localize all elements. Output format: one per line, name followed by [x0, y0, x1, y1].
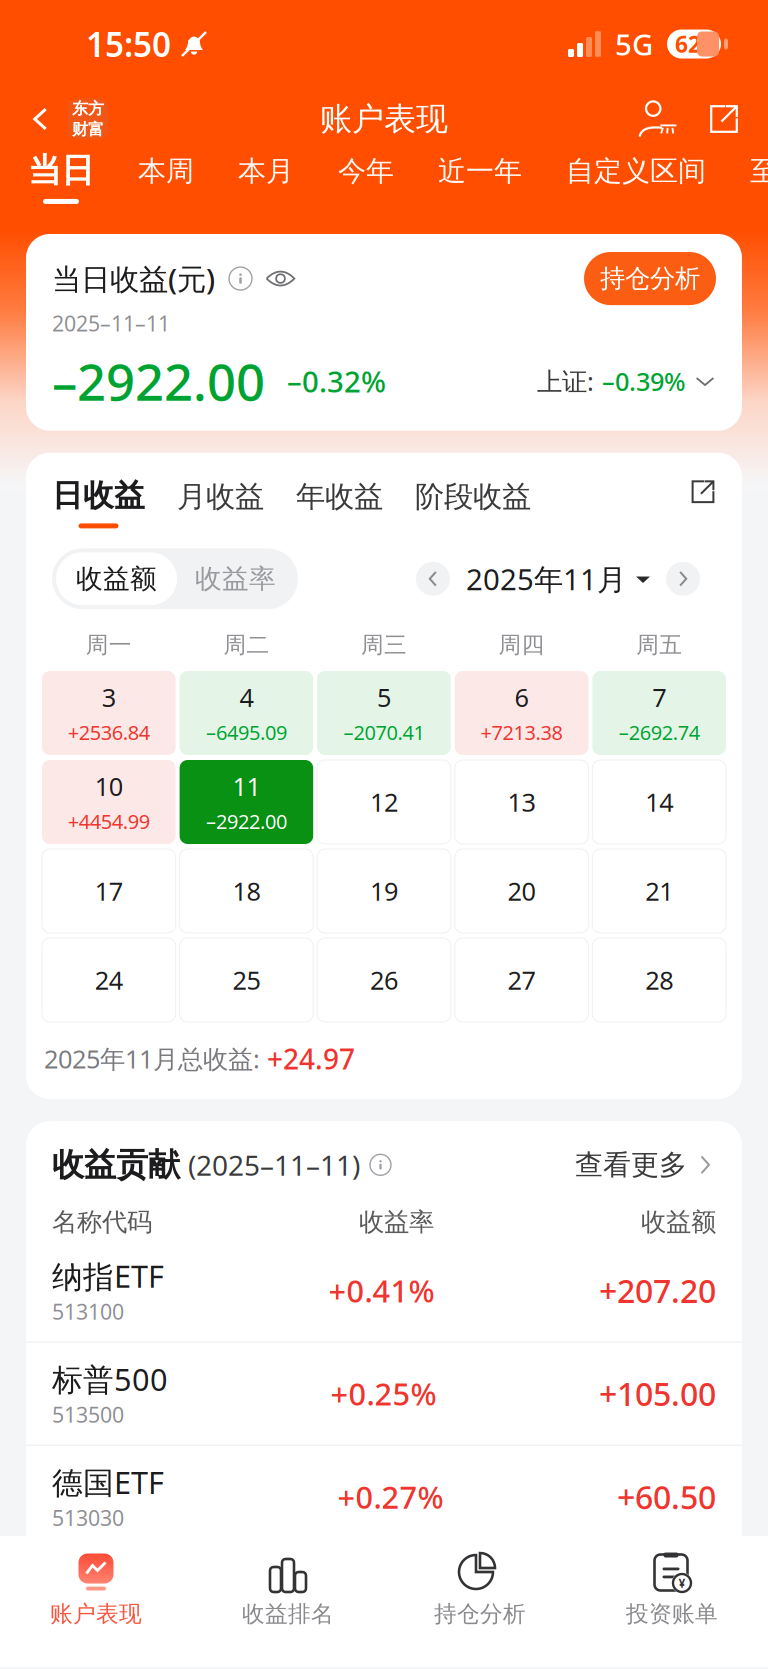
- staticText: 5: [377, 680, 391, 714]
- button[interactable]: 19: [317, 849, 451, 933]
- button[interactable]: 5: [317, 671, 451, 755]
- button[interactable]: 阶段收益: [383, 477, 531, 515]
- button[interactable]: 上一月: [416, 562, 450, 596]
- staticText: 东方: [72, 99, 104, 118]
- button[interactable]: 收益率: [177, 552, 294, 605]
- staticText: 18: [232, 874, 260, 908]
- staticText: 周四: [499, 631, 545, 659]
- button[interactable]: 当日: [28, 150, 94, 204]
- staticText: 收益率: [195, 562, 276, 595]
- button[interactable]: 上证:: [537, 364, 716, 398]
- button[interactable]: 近一年: [438, 150, 522, 188]
- button[interactable]: 收益说明: [215, 267, 252, 290]
- staticText: 收益排名: [242, 1600, 334, 1628]
- button[interactable]: 17: [42, 849, 176, 933]
- button[interactable]: 月收益: [145, 477, 264, 515]
- button[interactable]: 我的账户: [632, 99, 684, 139]
- staticText: 上证:: [537, 364, 594, 398]
- button[interactable]: 今年: [338, 150, 394, 188]
- button[interactable]: 本周: [138, 150, 194, 188]
- staticText: +24.97: [267, 1040, 355, 1077]
- button[interactable]: 返回东方财富: [22, 92, 114, 145]
- staticText: 513880: [52, 1606, 124, 1635]
- button[interactable]: 年收益: [264, 477, 383, 515]
- button[interactable]: 日收益: [52, 477, 145, 528]
- button[interactable]: 收益额: [56, 552, 177, 605]
- staticText: +0.25%: [330, 1373, 436, 1414]
- staticText: 收益贡献: [52, 1145, 180, 1184]
- staticText: 投资账单: [626, 1600, 718, 1628]
- button[interactable]: 收益排名: [192, 1550, 384, 1628]
- button[interactable]: 24: [42, 938, 176, 1022]
- button[interactable]: 26: [317, 938, 451, 1022]
- staticText: +105.00: [599, 1372, 716, 1415]
- staticText: 当日: [28, 150, 94, 191]
- staticText: 20: [508, 874, 536, 908]
- button[interactable]: 下一月: [666, 562, 700, 596]
- button[interactable]: 4: [180, 671, 313, 755]
- button[interactable]: 日经ETF: [26, 1549, 742, 1651]
- staticText: 持仓分析: [600, 263, 700, 294]
- staticText: 4: [239, 680, 253, 714]
- button[interactable]: 查看更多: [575, 1148, 716, 1182]
- staticText: 月收益: [177, 479, 264, 515]
- button[interactable]: 持仓分析: [584, 252, 716, 305]
- staticText: 本周: [138, 154, 194, 188]
- button[interactable]: 6: [455, 671, 588, 755]
- staticText: 日经ETF: [52, 1565, 164, 1605]
- button[interactable]: 自定义区间: [566, 150, 706, 188]
- button[interactable]: 28: [592, 938, 726, 1022]
- button[interactable]: 本月: [238, 150, 294, 188]
- button[interactable]: 德国ETF: [26, 1446, 742, 1548]
- staticText: 收益率: [359, 1206, 434, 1238]
- staticText: 25: [232, 963, 260, 997]
- button[interactable]: 10: [42, 760, 176, 844]
- button[interactable]: 14: [592, 760, 726, 844]
- staticText: 26: [370, 963, 398, 997]
- staticText: 近一年: [438, 154, 522, 188]
- button[interactable]: 至今: [750, 150, 768, 188]
- button[interactable]: ¥: [576, 1550, 768, 1628]
- staticText: (2025–11–11): [188, 1146, 360, 1183]
- button[interactable]: 27: [455, 938, 588, 1022]
- staticText: 今年: [338, 154, 394, 188]
- staticText: 21: [645, 874, 673, 908]
- staticText: 查看更多: [575, 1148, 687, 1182]
- button[interactable]: 25: [180, 938, 313, 1022]
- button[interactable]: 21: [592, 849, 726, 933]
- staticText: –2922.00: [206, 808, 287, 835]
- staticText: 账户表现: [320, 99, 448, 139]
- button[interactable]: 持仓分析: [384, 1550, 576, 1628]
- staticText: 17: [95, 874, 123, 908]
- button[interactable]: 12: [317, 760, 451, 844]
- button[interactable]: 3: [42, 671, 176, 755]
- staticText: 收益额: [641, 1206, 716, 1238]
- staticText: 周二: [223, 631, 269, 659]
- staticText: 2025–11–11: [52, 309, 170, 337]
- staticText: 15:50: [86, 22, 171, 66]
- button[interactable]: 分享: [684, 103, 740, 135]
- staticText: 24: [95, 963, 123, 997]
- button[interactable]: 7: [592, 671, 726, 755]
- staticText: 持仓分析: [434, 1600, 526, 1628]
- button[interactable]: 纳指ETF: [26, 1240, 742, 1342]
- staticText: 27: [508, 963, 536, 997]
- staticText: +0.18%: [337, 1579, 443, 1620]
- button[interactable]: 标普500: [26, 1343, 742, 1445]
- button[interactable]: 分享收益: [690, 477, 716, 505]
- staticText: +42.10: [617, 1578, 716, 1621]
- staticText: 2025年11月: [466, 559, 626, 598]
- button[interactable]: 13: [455, 760, 588, 844]
- button[interactable]: 隐藏金额: [252, 269, 295, 288]
- button[interactable]: 11: [180, 760, 313, 844]
- staticText: 年收益: [296, 479, 383, 515]
- staticText: +4454.99: [68, 808, 150, 835]
- staticText: 收益额: [76, 562, 157, 595]
- button[interactable]: 收益贡献说明: [360, 1154, 391, 1175]
- staticText: +0.41%: [328, 1270, 434, 1311]
- staticText: +7213.38: [481, 719, 563, 746]
- button[interactable]: 账户表现: [0, 1550, 192, 1628]
- button[interactable]: 20: [455, 849, 588, 933]
- staticText: 3: [102, 680, 116, 714]
- button[interactable]: 18: [180, 849, 313, 933]
